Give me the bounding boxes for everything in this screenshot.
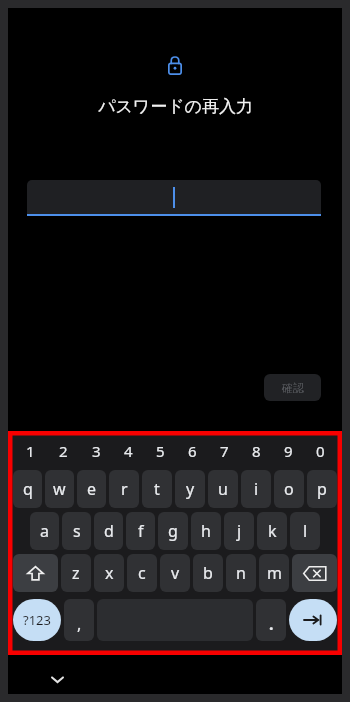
- button[interactable]: 8: [240, 437, 272, 465]
- button[interactable]: a: [30, 512, 59, 550]
- staticText: .: [269, 613, 274, 635]
- staticText: b: [203, 562, 213, 584]
- button[interactable]: k: [257, 512, 287, 550]
- button[interactable]: g: [158, 512, 188, 550]
- button[interactable]: j: [224, 512, 254, 550]
- staticText: t: [154, 478, 160, 500]
- staticText: 9: [284, 441, 293, 461]
- staticText: q: [23, 478, 33, 500]
- staticText: x: [105, 562, 114, 584]
- staticText: z: [72, 562, 80, 584]
- staticText: ?123: [23, 611, 51, 629]
- staticText: y: [186, 478, 195, 500]
- staticText: m: [267, 562, 282, 584]
- staticText: ,: [77, 613, 82, 635]
- button[interactable]: 9: [272, 437, 304, 465]
- button[interactable]: 4: [112, 437, 144, 465]
- button[interactable]: 7: [208, 437, 240, 465]
- button[interactable]: d: [94, 512, 123, 550]
- staticText: w: [53, 478, 66, 500]
- button[interactable]: o: [274, 470, 304, 508]
- button[interactable]: u: [208, 470, 238, 508]
- staticText: i: [254, 478, 259, 500]
- button[interactable]: l: [290, 512, 320, 550]
- staticText: 2: [59, 441, 68, 461]
- button[interactable]: r: [109, 470, 139, 508]
- button[interactable]: b: [193, 554, 223, 592]
- button[interactable]: 5: [144, 437, 176, 465]
- staticText: k: [268, 520, 277, 542]
- staticText: l: [303, 520, 308, 542]
- button[interactable]: 2: [47, 437, 80, 465]
- staticText: e: [87, 478, 97, 500]
- staticText: 8: [252, 441, 261, 461]
- button[interactable]: v: [160, 554, 190, 592]
- button[interactable]: 3: [80, 437, 112, 465]
- staticText: v: [171, 562, 180, 584]
- button[interactable]: Next: [289, 599, 337, 641]
- button[interactable]: Hide keyboard: [44, 666, 70, 692]
- button[interactable]: [27, 180, 321, 215]
- staticText: o: [284, 478, 294, 500]
- staticText: 5: [156, 441, 165, 461]
- button[interactable]: m: [259, 554, 289, 592]
- button[interactable]: e: [77, 470, 106, 508]
- staticText: f: [138, 520, 144, 542]
- button[interactable]: t: [142, 470, 172, 508]
- button[interactable]: Shift: [13, 554, 58, 592]
- button[interactable]: s: [62, 512, 91, 550]
- staticText: h: [201, 520, 211, 542]
- button[interactable]: y: [175, 470, 205, 508]
- button[interactable]: w: [45, 470, 74, 508]
- button[interactable]: c: [127, 554, 157, 592]
- button[interactable]: .: [256, 599, 286, 641]
- button[interactable]: p: [307, 470, 337, 508]
- staticText: 4: [124, 441, 133, 461]
- staticText: a: [40, 520, 49, 542]
- staticText: r: [121, 478, 128, 500]
- staticText: n: [236, 562, 246, 584]
- staticText: u: [218, 478, 228, 500]
- button[interactable]: h: [191, 512, 221, 550]
- staticText: 0: [316, 441, 325, 461]
- button[interactable]: i: [241, 470, 271, 508]
- staticText: s: [73, 520, 81, 542]
- button[interactable]: 1: [14, 437, 47, 465]
- staticText: 6: [188, 441, 197, 461]
- button[interactable]: ,: [64, 599, 94, 641]
- staticText: p: [317, 478, 327, 500]
- button[interactable]: f: [126, 512, 155, 550]
- button[interactable]: Backspace: [292, 554, 337, 592]
- staticText: 7: [220, 441, 229, 461]
- staticText: パスワードの再入力: [98, 96, 253, 117]
- button[interactable]: 6: [176, 437, 208, 465]
- button[interactable]: n: [226, 554, 256, 592]
- staticText: 確認: [282, 381, 304, 395]
- button[interactable]: 確認: [264, 374, 321, 401]
- staticText: 1: [26, 441, 35, 461]
- staticText: c: [138, 562, 146, 584]
- button[interactable]: x: [94, 554, 124, 592]
- button[interactable]: z: [61, 554, 91, 592]
- staticText: g: [168, 520, 178, 542]
- button[interactable]: ?123: [13, 599, 61, 641]
- button[interactable]: 0: [304, 437, 336, 465]
- button[interactable]: q: [13, 470, 42, 508]
- staticText: d: [104, 520, 114, 542]
- staticText: 3: [92, 441, 101, 461]
- staticText: j: [237, 520, 242, 542]
